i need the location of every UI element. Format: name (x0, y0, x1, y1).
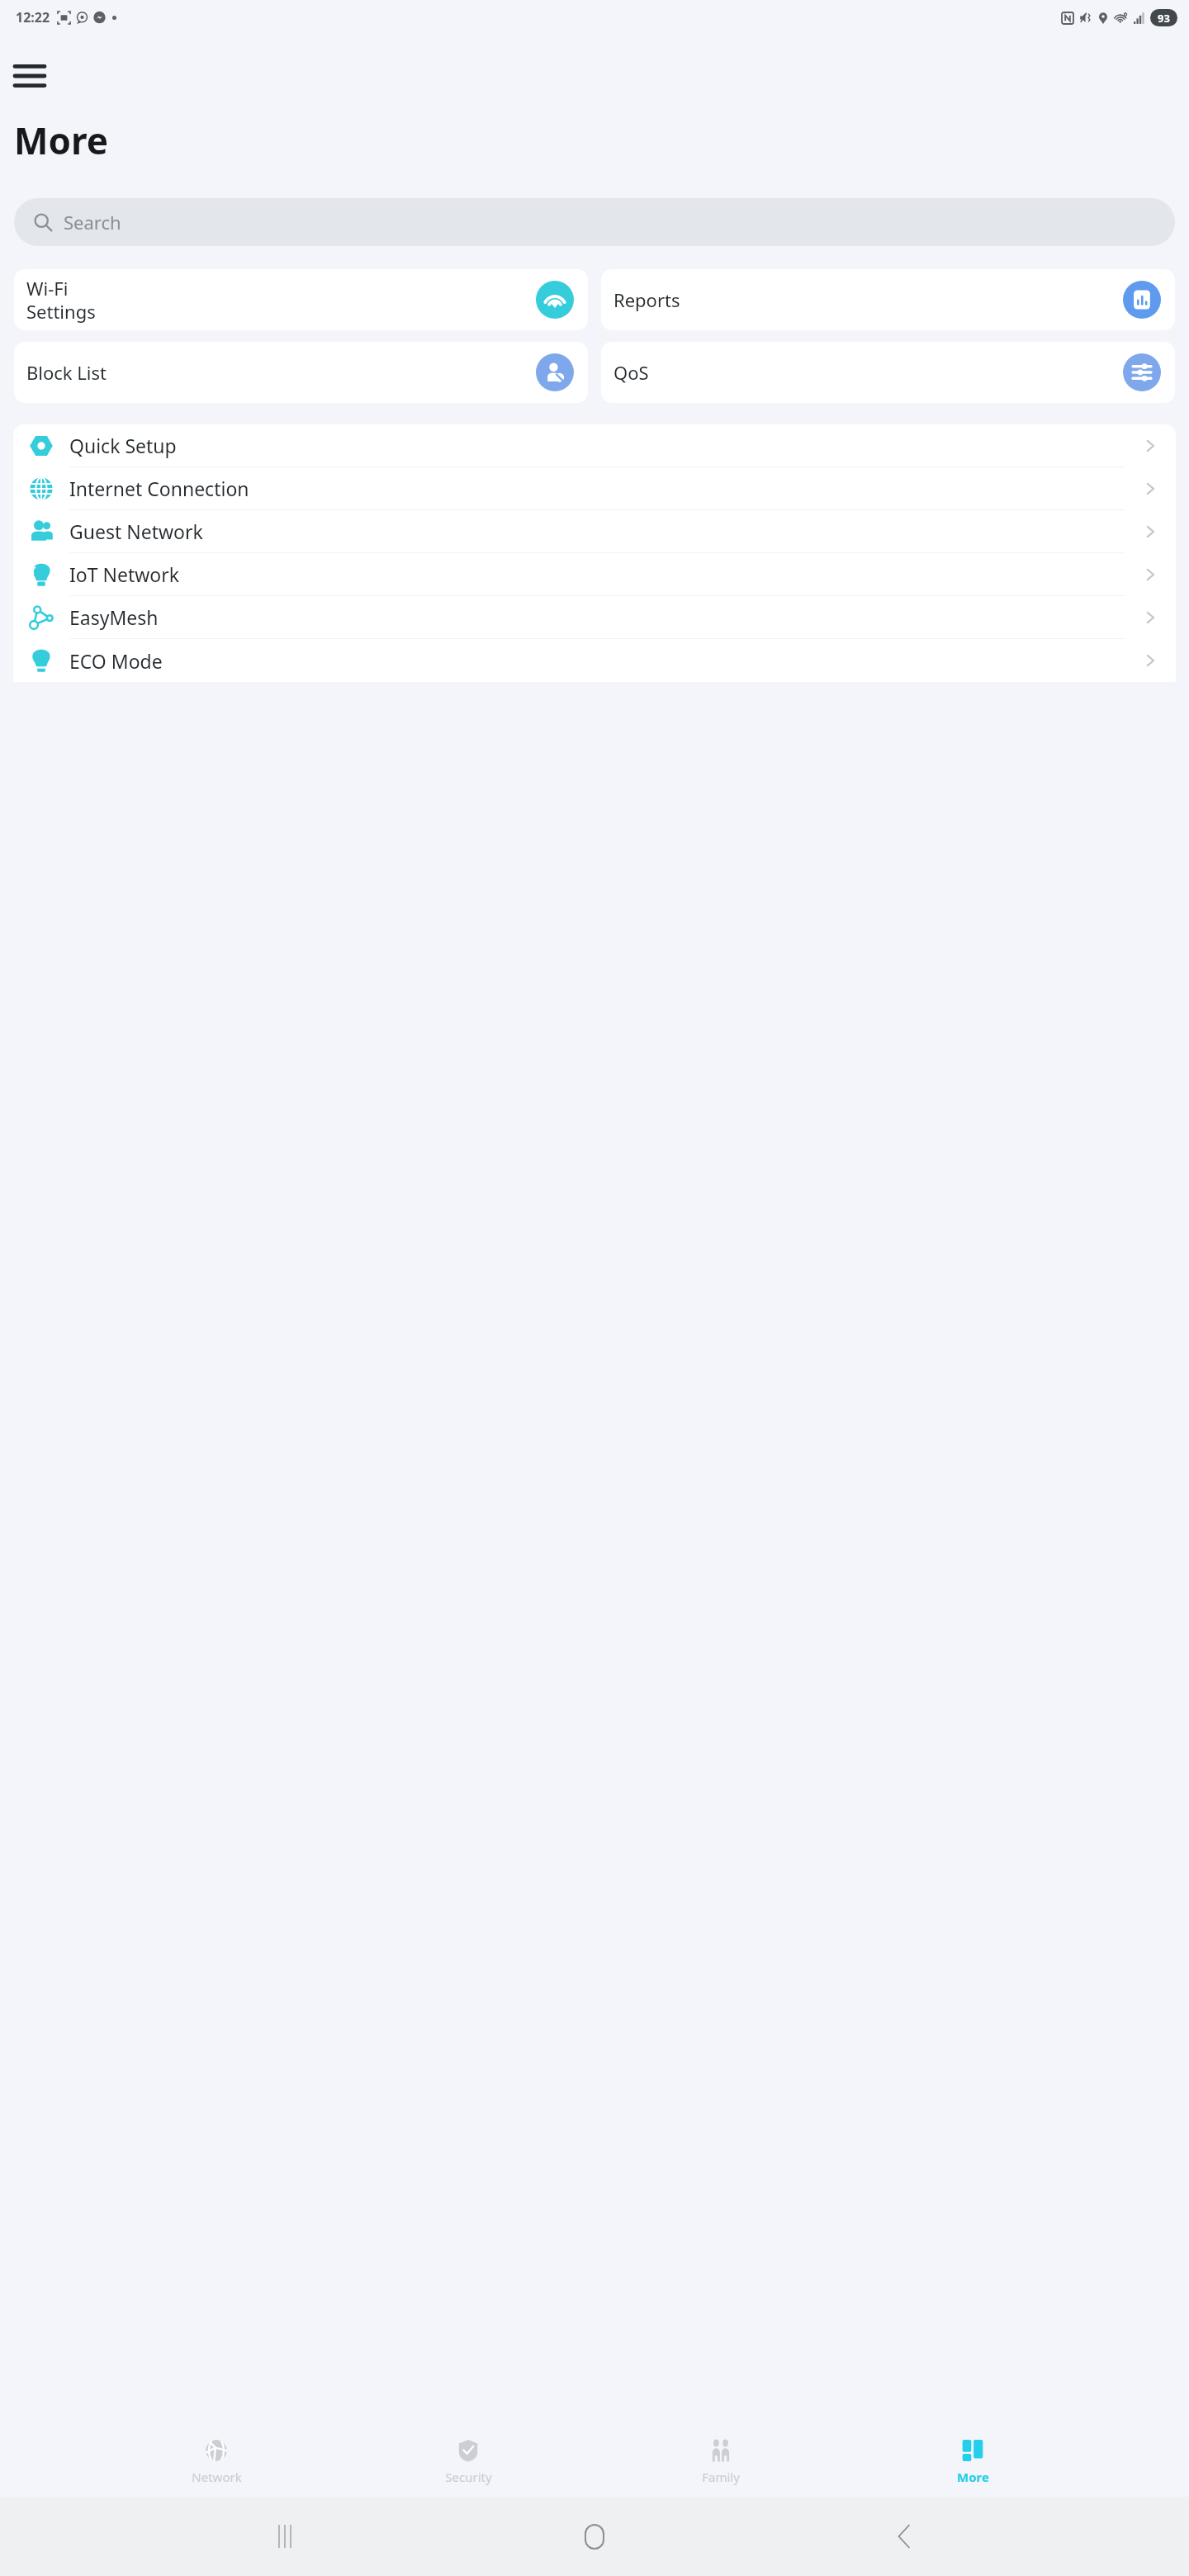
button[interactable]: Recents (260, 2512, 310, 2561)
staticText: Family (702, 2469, 740, 2485)
staticText: Security (445, 2469, 492, 2485)
button[interactable]: Home (570, 2512, 619, 2561)
button[interactable]: Menu (8, 54, 51, 97)
button[interactable]: ECO Mode (13, 639, 1176, 682)
button[interactable]: Internet Connection (13, 467, 1176, 510)
staticText: EasyMesh (69, 604, 159, 630)
staticText: Quick Setup (69, 433, 177, 458)
staticText: Network (192, 2469, 242, 2485)
button[interactable]: Guest Network (13, 510, 1176, 553)
staticText: QoS (613, 360, 1123, 385)
button[interactable]: Security (432, 2434, 504, 2490)
button[interactable]: Wi-Fi Settings (14, 269, 588, 330)
button[interactable]: Quick Setup (13, 424, 1176, 467)
staticText: 12:22 (16, 8, 50, 26)
button[interactable]: Search (14, 198, 1175, 246)
button[interactable]: Network (180, 2434, 253, 2490)
staticText: IoT Network (69, 561, 180, 587)
button[interactable]: Reports (601, 269, 1175, 330)
button[interactable]: EasyMesh (13, 596, 1176, 639)
staticText: ECO Mode (69, 648, 163, 674)
button[interactable]: Back (879, 2512, 929, 2561)
staticText: Internet Connection (69, 476, 249, 501)
staticText: Search (64, 210, 121, 234)
staticText: Reports (613, 287, 1123, 312)
staticText: 93 (1158, 11, 1170, 26)
button[interactable]: Block List (14, 342, 588, 403)
staticText: Wi-Fi Settings (26, 276, 536, 324)
button[interactable]: IoT Network (13, 553, 1176, 596)
staticText: More (14, 116, 109, 165)
staticText: Block List (26, 360, 536, 385)
button[interactable]: Family (685, 2434, 757, 2490)
button[interactable]: QoS (601, 342, 1175, 403)
staticText: More (957, 2469, 989, 2485)
button[interactable]: More (936, 2434, 1009, 2490)
staticText: Guest Network (69, 519, 203, 544)
